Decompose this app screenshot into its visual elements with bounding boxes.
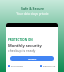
button[interactable]: Review (10, 56, 54, 61)
staticText: PROTECTION ON (8, 38, 33, 42)
staticText: Encrypted (11, 64, 23, 67)
staticText: Safe & Secure (21, 6, 44, 11)
staticText: Your data stays private (16, 12, 49, 16)
button[interactable]: Backed up (40, 64, 56, 67)
button[interactable]: Encrypted (8, 64, 23, 67)
staticText: Monthly security (8, 43, 42, 48)
staticText: Backed up (43, 64, 56, 67)
staticText: Review (28, 57, 37, 60)
staticText: checkup is ready (8, 48, 36, 53)
